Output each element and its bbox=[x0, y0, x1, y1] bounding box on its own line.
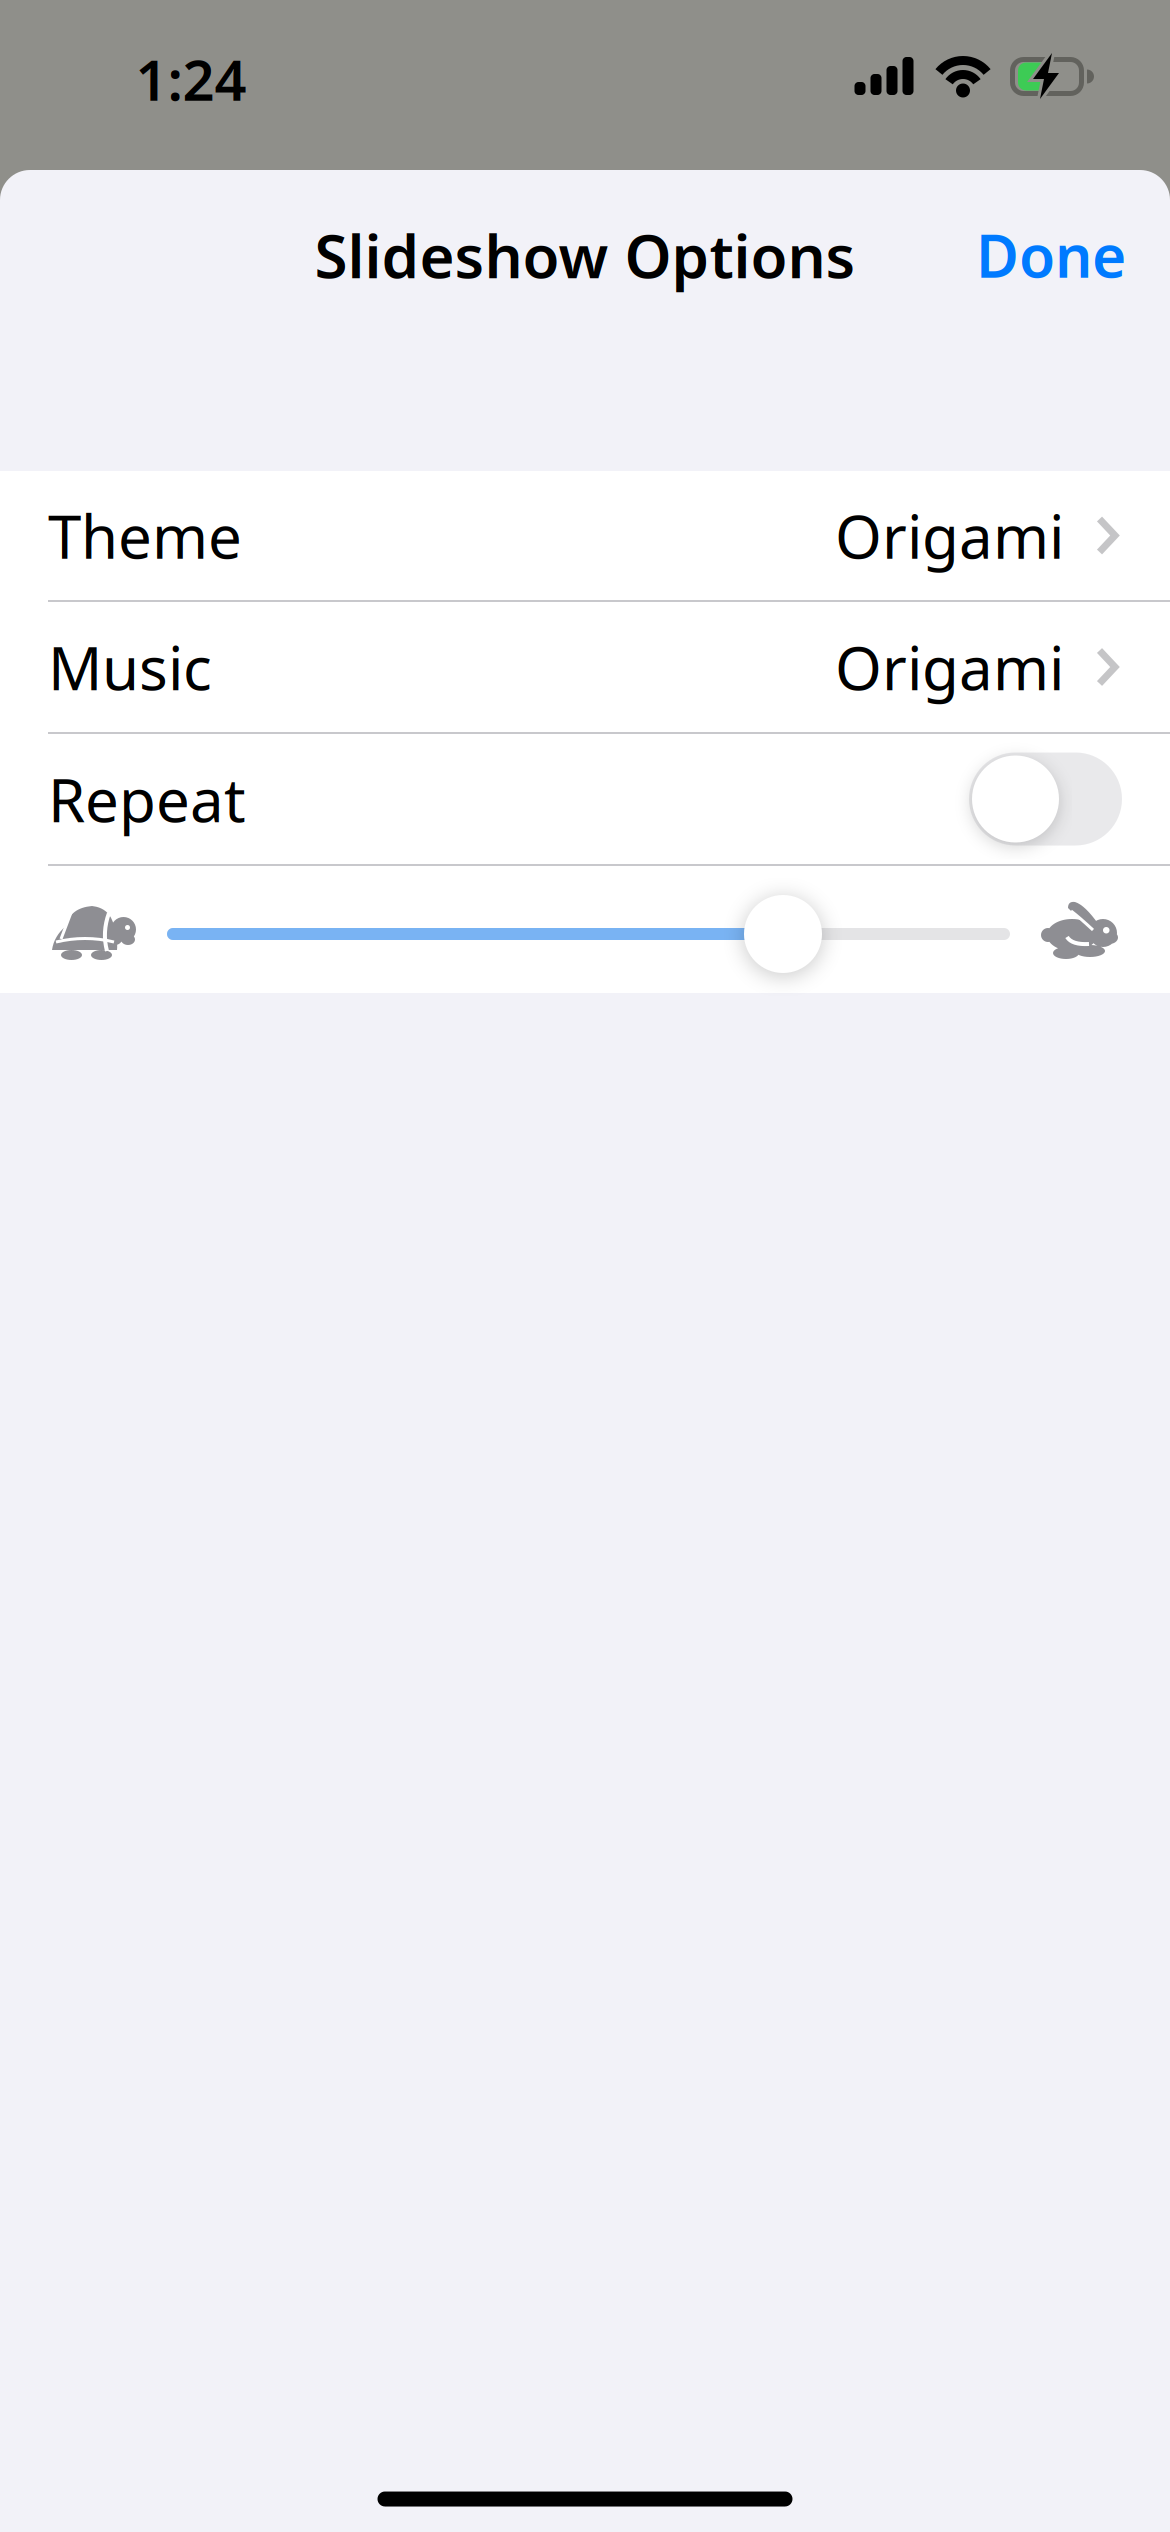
staticText: Slideshow Options bbox=[314, 215, 855, 295]
button[interactable]: Slideshow speed bbox=[744, 895, 822, 973]
staticText: Origami bbox=[835, 627, 1064, 707]
staticText: Theme bbox=[48, 496, 242, 575]
button[interactable]: Done bbox=[976, 216, 1126, 294]
button[interactable]: Music bbox=[0, 602, 1170, 732]
staticText: Origami bbox=[835, 496, 1064, 575]
button[interactable]: Theme bbox=[0, 471, 1170, 600]
button[interactable]: Repeat bbox=[969, 752, 1122, 845]
staticText: Done bbox=[976, 216, 1126, 294]
staticText: Music bbox=[48, 627, 212, 707]
staticText: Repeat bbox=[48, 759, 246, 839]
staticText: 1:24 bbox=[135, 42, 246, 116]
